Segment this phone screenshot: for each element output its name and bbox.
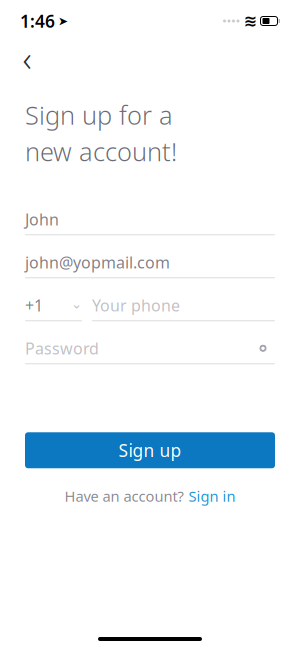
staticText: john@yopmail.com <box>25 252 170 273</box>
staticText: new account! <box>25 135 177 168</box>
staticText: ➤ <box>58 14 68 28</box>
staticText: ≋ <box>243 12 256 30</box>
staticText: Sign in <box>188 486 235 506</box>
staticText: Your phone <box>92 295 180 316</box>
staticText: ‹ <box>22 35 31 81</box>
staticText: +1 <box>25 295 43 316</box>
staticText: Have an account? <box>64 486 183 506</box>
button[interactable]: Back <box>10 41 44 75</box>
button[interactable]: Sign in <box>188 486 235 506</box>
button[interactable]: +1 <box>25 284 82 327</box>
staticText: Password <box>25 338 99 359</box>
staticText: John <box>25 209 59 230</box>
staticText: Sign up <box>118 439 181 462</box>
staticText: Sign up for a <box>25 98 173 132</box>
button[interactable]: Show password <box>251 336 275 360</box>
button[interactable]: Sign up <box>25 432 275 468</box>
staticText: ⌄ <box>71 296 82 311</box>
staticText: 1:46 <box>20 9 55 32</box>
